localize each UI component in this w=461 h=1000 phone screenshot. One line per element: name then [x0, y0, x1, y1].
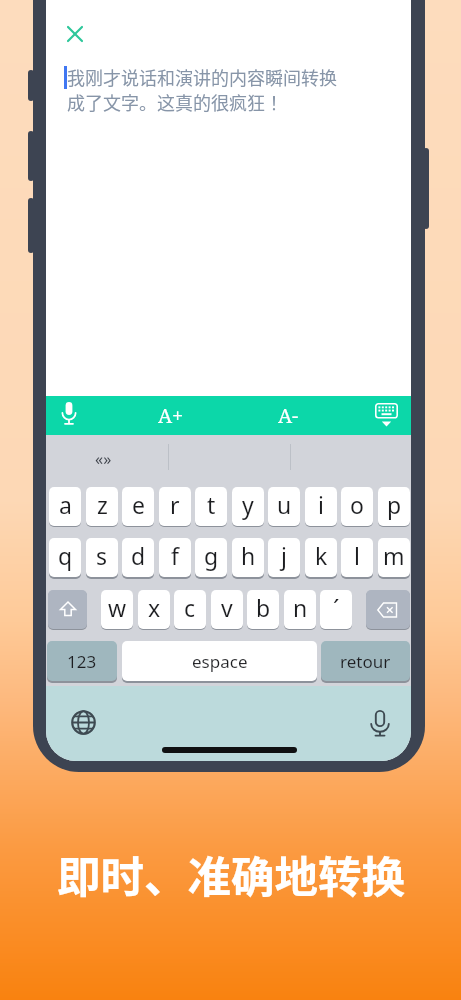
- button[interactable]: [375, 403, 398, 427]
- staticText: b: [256, 592, 271, 623]
- button[interactable]: w: [101, 590, 133, 629]
- button[interactable]: a: [49, 487, 81, 526]
- staticText: j: [281, 540, 287, 571]
- button[interactable]: retour: [321, 641, 410, 681]
- button[interactable]: [61, 402, 77, 426]
- button[interactable]: u: [268, 487, 300, 526]
- button[interactable]: s: [86, 538, 118, 577]
- staticText: retour: [340, 650, 391, 673]
- staticText: m: [383, 540, 405, 571]
- button[interactable]: d: [122, 538, 154, 577]
- button[interactable]: x: [138, 590, 170, 629]
- button[interactable]: c: [174, 590, 206, 629]
- button[interactable]: 123: [47, 641, 117, 681]
- staticText: r: [170, 489, 180, 520]
- button[interactable]: A+: [141, 396, 201, 435]
- button[interactable]: [370, 710, 390, 737]
- staticText: «»: [95, 448, 112, 470]
- staticText: p: [387, 489, 402, 520]
- button[interactable]: z: [86, 487, 118, 526]
- button[interactable]: i: [305, 487, 337, 526]
- button[interactable]: g: [195, 538, 227, 577]
- button[interactable]: espace: [122, 641, 317, 681]
- button[interactable]: j: [268, 538, 300, 577]
- staticText: w: [108, 592, 127, 623]
- staticText: c: [184, 592, 196, 623]
- staticText: 123: [67, 650, 97, 673]
- staticText: v: [221, 592, 233, 623]
- staticText: 即时、准确地转换: [57, 843, 405, 905]
- button[interactable]: o: [341, 487, 373, 526]
- staticText: i: [318, 489, 324, 520]
- button[interactable]: v: [211, 590, 243, 629]
- button[interactable]: A-: [258, 396, 318, 435]
- staticText: o: [350, 489, 364, 520]
- staticText: d: [131, 540, 146, 571]
- button[interactable]: r: [159, 487, 191, 526]
- button[interactable]: [366, 590, 410, 629]
- staticText: f: [171, 540, 179, 571]
- button[interactable]: ´: [320, 590, 352, 629]
- staticText: A+: [158, 402, 184, 429]
- staticText: e: [132, 489, 145, 520]
- staticText: z: [97, 489, 108, 520]
- staticText: espace: [192, 650, 248, 673]
- button[interactable]: «»: [83, 444, 123, 474]
- button[interactable]: [48, 590, 87, 629]
- staticText: u: [277, 489, 292, 520]
- staticText: 我刚才说话和演讲的内容瞬间转换 成了文字。这真的很疯狂！: [67, 64, 337, 115]
- staticText: q: [58, 540, 73, 571]
- button[interactable]: m: [378, 538, 410, 577]
- button[interactable]: [71, 710, 96, 735]
- button[interactable]: t: [195, 487, 227, 526]
- button[interactable]: n: [284, 590, 316, 629]
- staticText: k: [315, 540, 328, 571]
- button[interactable]: f: [159, 538, 191, 577]
- button[interactable]: k: [305, 538, 337, 577]
- staticText: y: [242, 489, 254, 520]
- staticText: g: [204, 540, 219, 571]
- button[interactable]: q: [49, 538, 81, 577]
- button[interactable]: b: [247, 590, 279, 629]
- staticText: x: [148, 592, 161, 623]
- button[interactable]: h: [232, 538, 264, 577]
- staticText: t: [207, 489, 216, 520]
- staticText: A-: [278, 402, 299, 429]
- staticText: a: [59, 489, 72, 520]
- button[interactable]: e: [122, 487, 154, 526]
- staticText: ´: [333, 592, 340, 623]
- button[interactable]: p: [378, 487, 410, 526]
- button[interactable]: y: [232, 487, 264, 526]
- staticText: l: [354, 540, 360, 571]
- staticText: n: [293, 592, 308, 623]
- button[interactable]: [67, 26, 83, 42]
- staticText: h: [241, 540, 256, 571]
- staticText: s: [96, 540, 108, 571]
- button[interactable]: l: [341, 538, 373, 577]
